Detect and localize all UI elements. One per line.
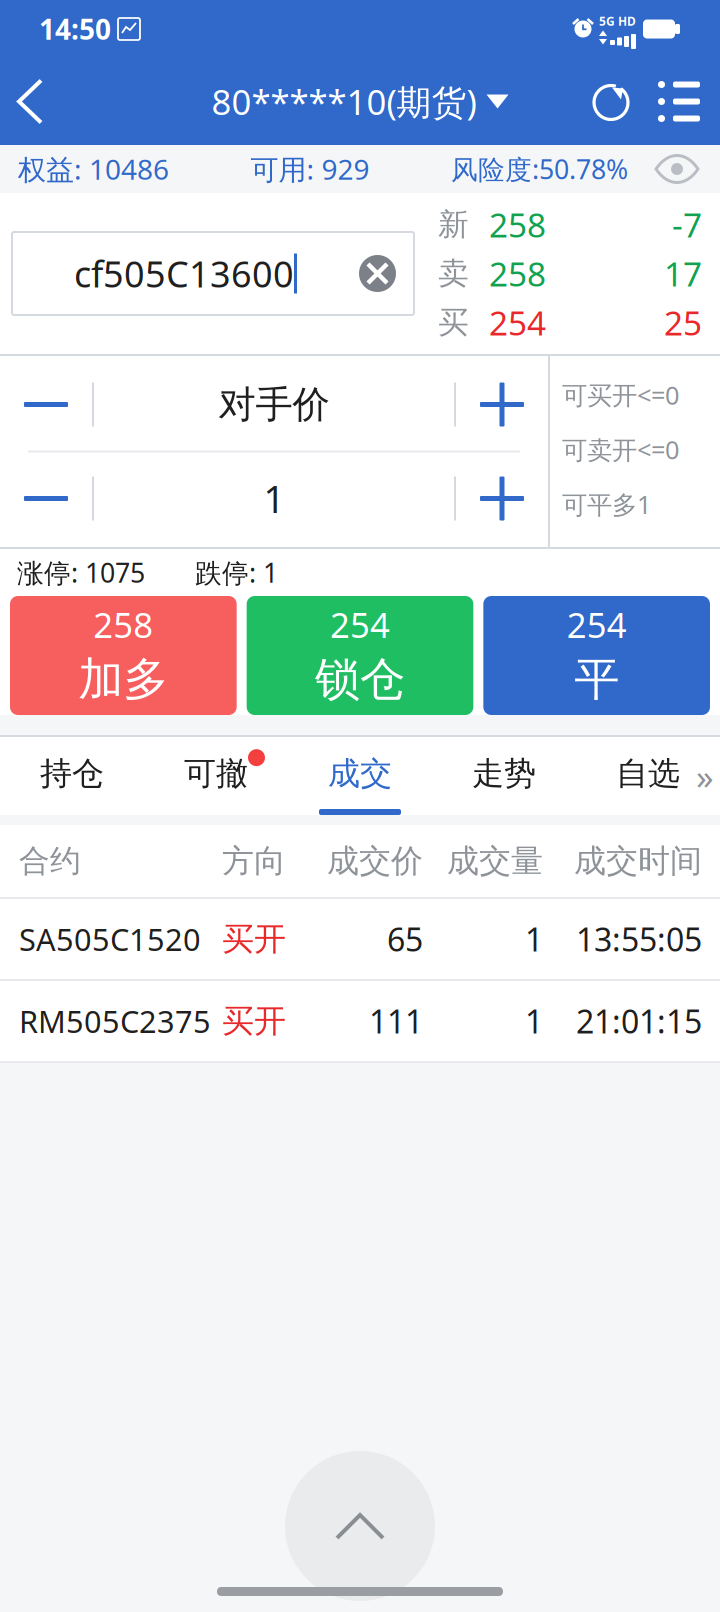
staticText: 14:50 (39, 10, 111, 48)
button[interactable]: Increase (456, 358, 548, 450)
staticText: -7 (672, 202, 702, 247)
staticText: 方向 (222, 841, 286, 881)
staticText: 5G HD (599, 13, 636, 29)
staticText: 走势 (472, 754, 536, 793)
staticText: 成交价 (327, 841, 423, 881)
staticText: 买开 (222, 919, 286, 959)
button[interactable]: Back (0, 59, 64, 143)
staticText: 涨停: 1075 (17, 555, 145, 590)
staticText: 1 (263, 474, 284, 523)
staticText: 可买开<=0 (562, 378, 679, 412)
staticText: 80*****10(期货) (211, 78, 476, 124)
staticText: 卖 (438, 255, 469, 292)
staticText: RM505C2375 (19, 1001, 211, 1041)
staticText: 成交 (328, 754, 392, 793)
staticText: 258 (489, 202, 546, 247)
staticText: 1 (525, 1000, 543, 1042)
staticText: 1 (525, 918, 543, 960)
staticText: 13:55:05 (576, 918, 702, 960)
staticText: 成交量 (447, 841, 543, 881)
staticText: 65 (387, 918, 423, 960)
staticText: 258 (93, 602, 153, 648)
staticText: 跌停: 1 (195, 555, 278, 590)
staticText: 254 (489, 300, 546, 345)
staticText: 可用: 929 (250, 150, 369, 188)
staticText: 成交时间 (574, 841, 702, 881)
button[interactable]: 走势 (432, 737, 576, 815)
staticText: 111 (369, 1000, 423, 1042)
staticText: 21:01:15 (576, 1000, 702, 1042)
staticText: 买开 (222, 1001, 286, 1041)
button[interactable]: 254 (483, 596, 710, 715)
button[interactable]: Toggle balance visibility (654, 156, 700, 182)
staticText: 可撤 (184, 754, 248, 793)
button[interactable]: 持仓 (0, 737, 144, 815)
button[interactable]: Clear (359, 255, 396, 292)
button[interactable]: Decrease (0, 452, 92, 544)
staticText: 可平多1 (562, 487, 651, 521)
staticText: 258 (489, 251, 546, 296)
staticText: 对手价 (218, 382, 329, 427)
staticText: 持仓 (40, 754, 104, 793)
button[interactable]: Refresh (580, 66, 644, 136)
staticText: 254 (330, 602, 390, 648)
button[interactable]: Decrease (0, 358, 92, 450)
button[interactable]: 自选 (576, 737, 720, 815)
staticText: 买 (438, 304, 469, 341)
button[interactable]: 可撤 (144, 737, 288, 815)
button[interactable]: 258 (10, 596, 237, 715)
staticText: » (696, 753, 714, 799)
staticText: 自选 (616, 754, 680, 793)
staticText: 17 (664, 251, 702, 296)
staticText: cf505C13600 (74, 250, 294, 297)
button[interactable]: 成交 (288, 737, 432, 815)
staticText: 合约 (19, 842, 81, 880)
staticText: 可卖开<=0 (562, 433, 679, 466)
staticText: 25 (664, 300, 702, 345)
staticText: 平 (574, 652, 619, 707)
button[interactable]: Increase (456, 452, 548, 544)
staticText: 权益: 10486 (18, 150, 169, 188)
staticText: 风险度:50.78% (451, 151, 628, 187)
staticText: 254 (567, 602, 627, 648)
staticText: 加多 (78, 652, 168, 707)
button[interactable]: 254 (247, 596, 473, 715)
staticText: 锁仓 (315, 652, 405, 707)
staticText: 新 (438, 206, 469, 243)
staticText: SA505C1520 (19, 919, 201, 959)
button[interactable]: 80*****10(期货) (211, 60, 508, 142)
button[interactable]: Menu (650, 68, 720, 134)
